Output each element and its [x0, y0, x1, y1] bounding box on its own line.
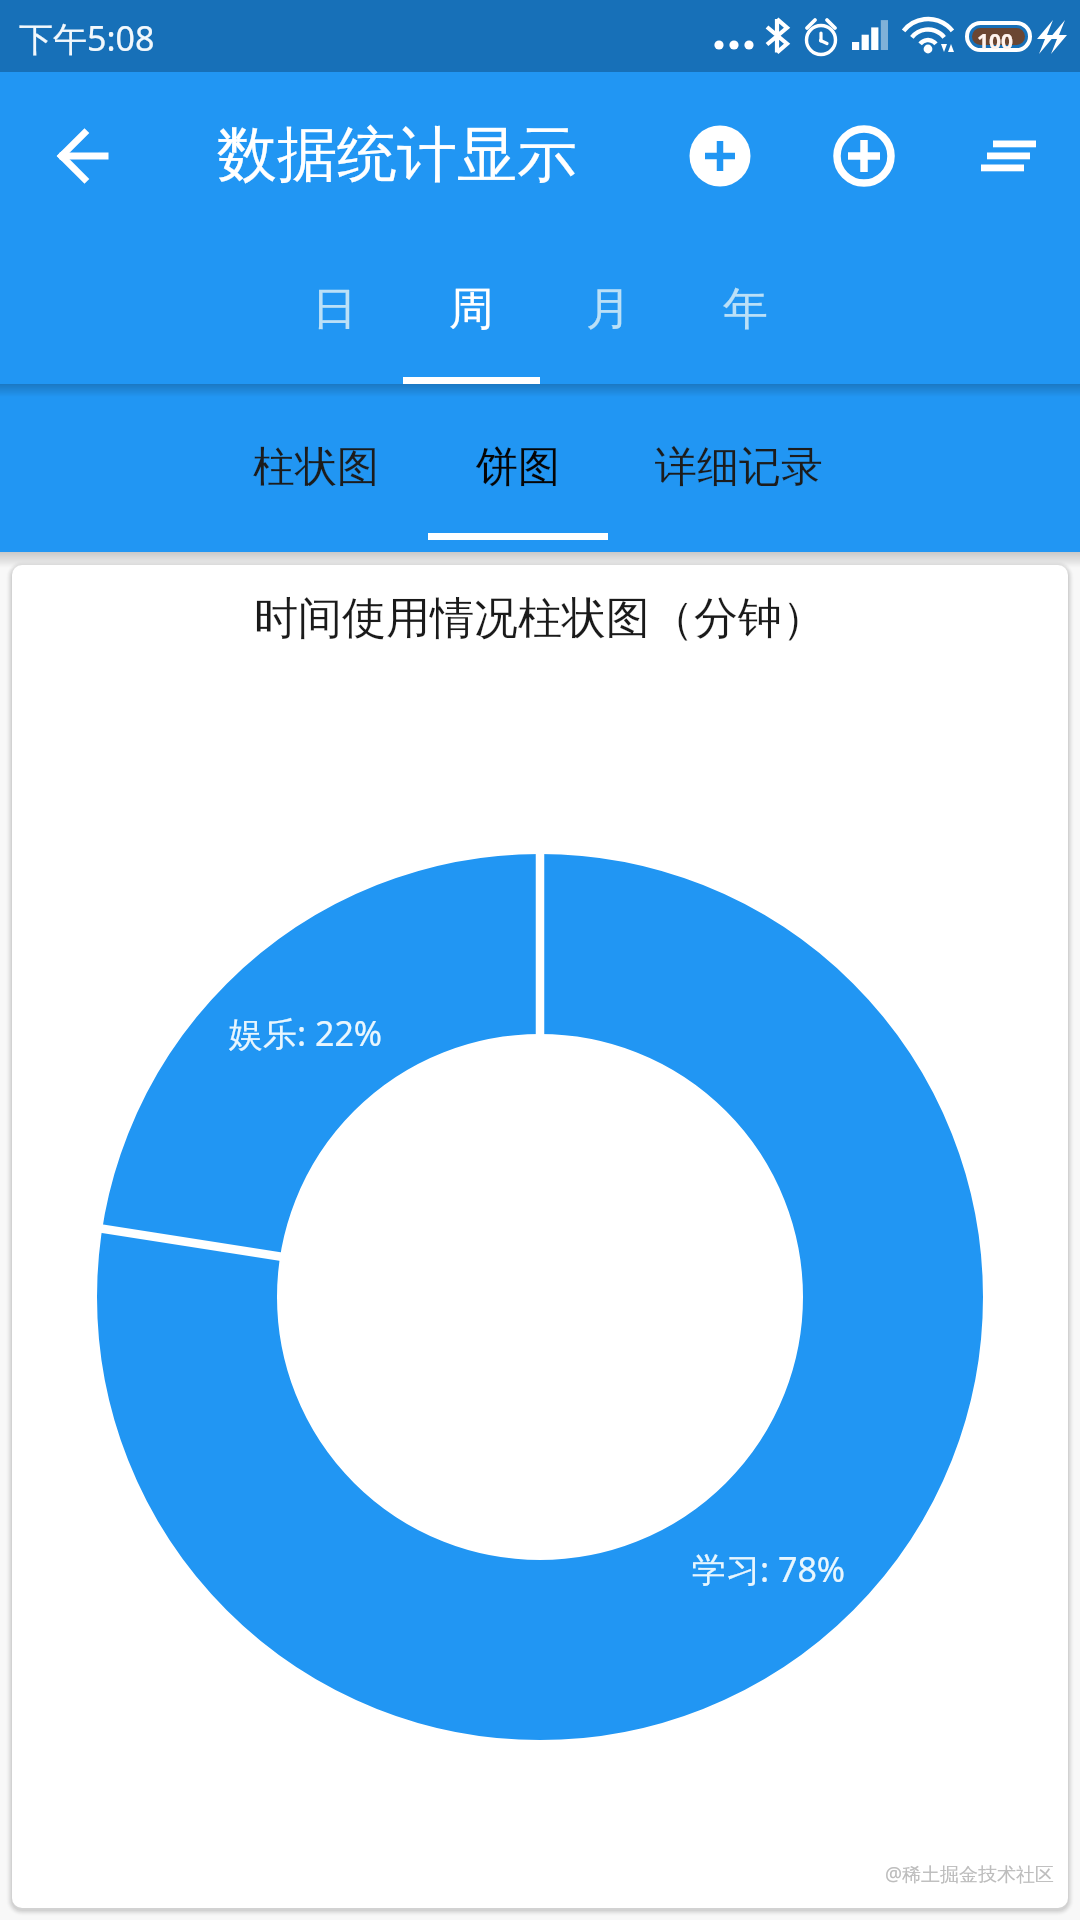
staticText: 柱状图: [253, 441, 379, 494]
staticText: 月: [586, 281, 631, 338]
button[interactable]: 年: [677, 234, 814, 384]
staticText: 年: [723, 281, 768, 338]
staticText: 数据统计显示: [217, 117, 577, 193]
staticText: 饼图: [476, 441, 560, 494]
staticText: 娱乐: 22%: [229, 1010, 383, 1056]
button[interactable]: Menu: [958, 106, 1058, 206]
staticText: 学习: 78%: [692, 1546, 846, 1592]
staticText: @稀土掘金技术社区: [885, 1861, 1055, 1887]
button[interactable]: 柱状图: [216, 384, 416, 551]
staticText: 日: [312, 281, 357, 338]
button[interactable]: 详细记录: [629, 384, 849, 551]
staticText: 下午5:08: [19, 15, 155, 61]
button[interactable]: 周: [403, 234, 540, 384]
button[interactable]: 日: [266, 234, 403, 384]
button[interactable]: 月: [540, 234, 677, 384]
button[interactable]: 饼图: [418, 384, 618, 551]
staticText: 详细记录: [655, 441, 823, 494]
staticText: 周: [449, 281, 494, 338]
staticText: 时间使用情况柱状图（分钟）: [254, 591, 826, 646]
button[interactable]: Add record: [670, 106, 770, 206]
button[interactable]: Back: [32, 104, 136, 208]
button[interactable]: New item: [814, 106, 914, 206]
staticText: 100: [977, 27, 1014, 56]
